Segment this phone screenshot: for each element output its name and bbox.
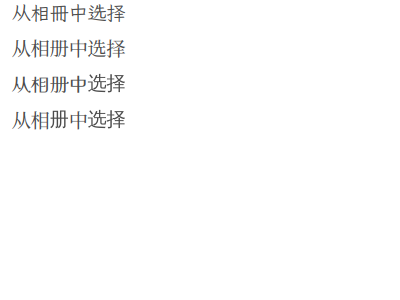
staticText: 从相册中选择 — [11, 33, 125, 61]
staticText: 从相册中选择 — [11, 69, 125, 97]
staticText: 从相册中选择 — [11, 105, 125, 133]
staticText: 从相册中选择 — [11, 0, 125, 25]
